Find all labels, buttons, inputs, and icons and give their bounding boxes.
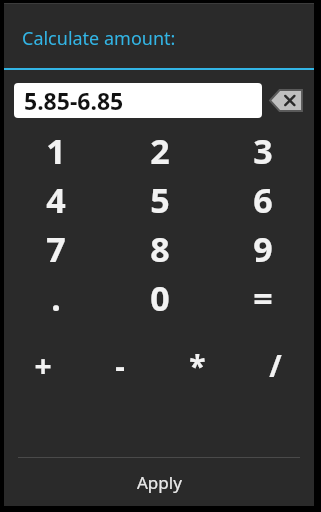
button[interactable]: 4 bbox=[4, 175, 108, 224]
staticText: Calculate amount: bbox=[22, 26, 176, 51]
button[interactable]: / bbox=[236, 340, 314, 390]
button[interactable]: 5 bbox=[108, 175, 211, 224]
button[interactable]: - bbox=[81, 340, 158, 390]
button[interactable]: 2 bbox=[108, 126, 211, 175]
button[interactable]: 3 bbox=[211, 126, 314, 175]
staticText: + bbox=[34, 345, 52, 386]
staticText: 2 bbox=[150, 128, 170, 174]
button[interactable]: Backspace bbox=[268, 83, 304, 118]
button[interactable]: * bbox=[158, 340, 236, 390]
staticText: - bbox=[115, 345, 125, 386]
button[interactable]: 7 bbox=[4, 224, 108, 273]
staticText: . bbox=[51, 275, 61, 321]
staticText: * bbox=[189, 345, 206, 386]
button[interactable]: = bbox=[211, 273, 314, 322]
staticText: 9 bbox=[253, 226, 273, 272]
staticText: 4 bbox=[46, 177, 66, 223]
staticText: 8 bbox=[150, 226, 170, 272]
button[interactable]: 9 bbox=[211, 224, 314, 273]
button[interactable]: . bbox=[4, 273, 108, 322]
staticText: / bbox=[269, 345, 282, 386]
staticText: 0 bbox=[150, 275, 170, 321]
staticText: = bbox=[253, 275, 273, 321]
button[interactable]: 8 bbox=[108, 224, 211, 273]
staticText: 3 bbox=[253, 128, 273, 174]
button[interactable]: 5.85-6.85 bbox=[14, 83, 262, 118]
button[interactable]: Apply bbox=[4, 458, 314, 506]
button[interactable]: 6 bbox=[211, 175, 314, 224]
button[interactable]: + bbox=[4, 340, 81, 390]
staticText: 6 bbox=[253, 177, 273, 223]
staticText: Apply bbox=[137, 471, 182, 494]
staticText: 5 bbox=[150, 177, 170, 223]
button[interactable]: 1 bbox=[4, 126, 108, 175]
staticText: 1 bbox=[46, 128, 66, 174]
staticText: 5.85-6.85 bbox=[24, 85, 124, 116]
staticText: 7 bbox=[46, 226, 66, 272]
button[interactable]: 0 bbox=[108, 273, 211, 322]
